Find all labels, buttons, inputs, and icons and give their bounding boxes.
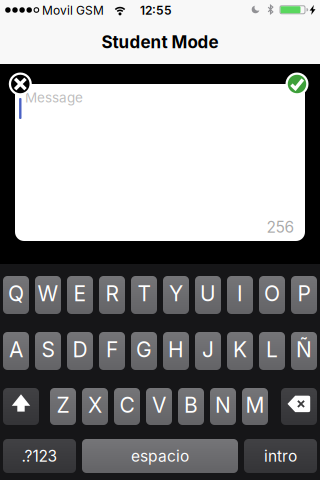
staticText: C xyxy=(119,392,134,418)
staticText: A xyxy=(9,337,23,362)
button[interactable]: G xyxy=(131,332,157,370)
button[interactable]: W xyxy=(35,276,61,314)
staticText: Student Mode xyxy=(101,32,218,52)
staticText: F xyxy=(106,337,118,362)
staticText: N xyxy=(215,392,231,418)
staticText: P xyxy=(297,281,310,306)
staticText: J xyxy=(202,337,214,362)
staticText: G xyxy=(136,337,152,362)
button[interactable]: B xyxy=(178,388,204,425)
button[interactable]: D xyxy=(67,332,93,370)
staticText: R xyxy=(105,281,118,306)
staticText: 12:55 xyxy=(140,3,172,18)
staticText: V xyxy=(152,392,166,418)
button[interactable]: E xyxy=(67,276,93,314)
button[interactable]: Close xyxy=(9,72,32,95)
button[interactable]: S xyxy=(35,332,61,370)
staticText: Movil GSM xyxy=(42,3,104,18)
button[interactable]: V xyxy=(146,388,172,425)
button[interactable]: Shift xyxy=(3,388,39,425)
button[interactable]: Send xyxy=(285,72,308,95)
staticText: 256 xyxy=(266,218,294,236)
button[interactable]: .?123 xyxy=(3,439,76,473)
button[interactable]: F xyxy=(99,332,125,370)
button[interactable]: Q xyxy=(3,276,29,314)
button[interactable]: intro xyxy=(244,439,317,473)
button[interactable]: T xyxy=(131,276,157,314)
button[interactable]: K xyxy=(227,332,253,370)
staticText: Message xyxy=(25,89,83,106)
button[interactable]: U xyxy=(195,276,221,314)
button[interactable]: Z xyxy=(50,388,76,425)
staticText: B xyxy=(184,392,198,418)
button[interactable]: R xyxy=(99,276,125,314)
staticText: .?123 xyxy=(21,447,57,465)
staticText: Z xyxy=(56,392,69,418)
staticText: M xyxy=(245,392,264,418)
button[interactable]: O xyxy=(259,276,285,314)
staticText: E xyxy=(73,281,86,306)
staticText: O xyxy=(264,281,280,306)
button[interactable]: Ñ xyxy=(291,332,317,370)
button[interactable]: M xyxy=(242,388,268,425)
staticText: T xyxy=(137,281,150,306)
button[interactable]: espacio xyxy=(82,439,238,473)
staticText: S xyxy=(41,337,54,362)
button[interactable]: L xyxy=(259,332,285,370)
button[interactable]: P xyxy=(291,276,317,314)
staticText: K xyxy=(233,337,247,362)
staticText: D xyxy=(72,337,87,362)
button[interactable]: H xyxy=(163,332,189,370)
button[interactable]: C xyxy=(114,388,140,425)
button[interactable]: N xyxy=(210,388,236,425)
staticText: Y xyxy=(169,281,183,306)
staticText: espacio xyxy=(131,447,189,465)
staticText: H xyxy=(168,337,184,362)
button[interactable]: X xyxy=(82,388,108,425)
staticText: I xyxy=(237,281,243,306)
staticText: intro xyxy=(264,447,297,465)
button[interactable]: Y xyxy=(163,276,189,314)
staticText: X xyxy=(88,392,102,418)
staticText: Q xyxy=(8,281,24,306)
staticText: Ñ xyxy=(296,337,312,362)
staticText: W xyxy=(37,281,58,306)
staticText: U xyxy=(200,281,216,306)
button[interactable]: A xyxy=(3,332,29,370)
button[interactable]: J xyxy=(195,332,221,370)
button[interactable]: I xyxy=(227,276,253,314)
staticText: L xyxy=(266,337,278,362)
button[interactable]: Delete xyxy=(281,388,317,425)
